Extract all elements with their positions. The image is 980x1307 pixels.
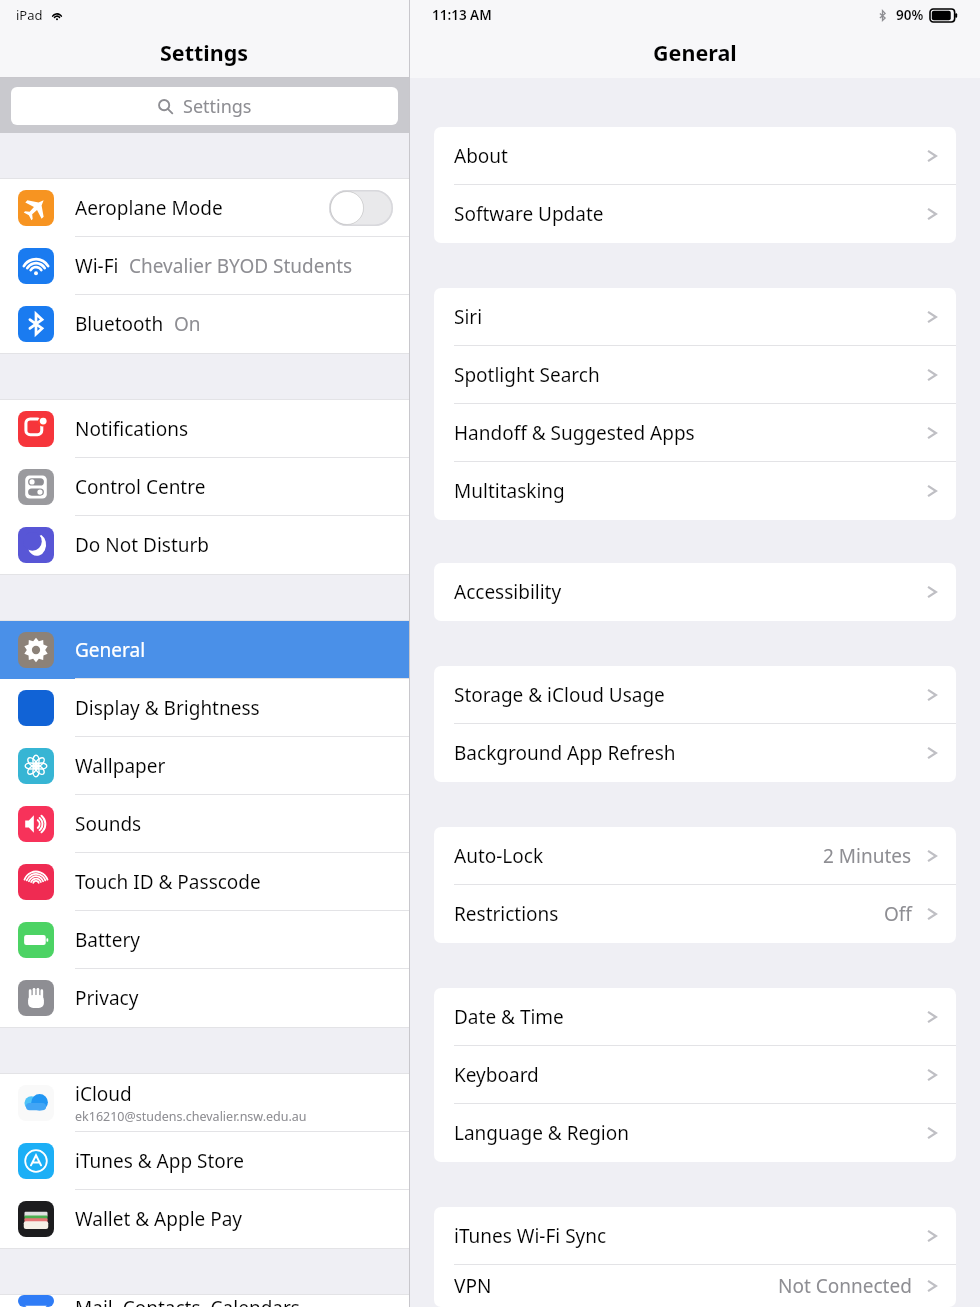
button[interactable]: Date & Time — [434, 988, 956, 1046]
staticText: VPN — [454, 1273, 778, 1299]
staticText: Settings — [183, 94, 252, 119]
staticText: Wi-Fi — [75, 253, 119, 279]
button[interactable]: Restrictions — [434, 885, 956, 943]
button[interactable]: Wallpaper — [0, 737, 409, 795]
staticText: Wallpaper — [75, 753, 166, 779]
staticText: Language & Region — [454, 1120, 922, 1146]
button[interactable]: Notifications — [0, 400, 409, 458]
staticText: Storage & iCloud Usage — [454, 682, 922, 708]
button[interactable]: Wi-Fi — [0, 237, 409, 295]
button[interactable]: General — [0, 621, 409, 679]
staticText: About — [454, 143, 922, 169]
staticText: Sounds — [75, 811, 142, 837]
staticText: General — [75, 637, 146, 663]
staticText: Do Not Disturb — [75, 532, 210, 558]
button[interactable]: Siri — [434, 288, 956, 346]
staticText: Wallet & Apple Pay — [75, 1206, 243, 1232]
staticText: Siri — [454, 304, 922, 330]
staticText: iPad — [16, 6, 43, 24]
staticText: Multitasking — [454, 478, 922, 504]
staticText: Keyboard — [454, 1062, 922, 1088]
staticText: iCloud — [75, 1081, 132, 1107]
button[interactable]: Language & Region — [434, 1104, 956, 1162]
button[interactable]: Touch ID & Passcode — [0, 853, 409, 911]
staticText: Touch ID & Passcode — [75, 869, 261, 895]
staticText: Settings — [160, 38, 249, 67]
button[interactable]: Spotlight Search — [434, 346, 956, 404]
staticText: Aeroplane Mode — [75, 195, 223, 221]
staticText: 90% — [896, 6, 924, 24]
staticText: Mail, Contacts, Calendars — [75, 1295, 300, 1307]
button[interactable]: Accessibility — [434, 563, 956, 621]
button[interactable]: Mail, Contacts, Calendars — [0, 1295, 409, 1307]
staticText: Off — [884, 901, 912, 927]
button[interactable]: Display & Brightness — [0, 679, 409, 737]
staticText: Auto-Lock — [454, 843, 823, 869]
button[interactable]: Software Update — [434, 185, 956, 243]
button[interactable]: Settings — [11, 87, 398, 125]
staticText: Not Connected — [778, 1273, 912, 1299]
button[interactable]: About — [434, 127, 956, 185]
staticText: Spotlight Search — [454, 362, 922, 388]
staticText: Privacy — [75, 985, 139, 1011]
staticText: iTunes & App Store — [75, 1148, 245, 1174]
button[interactable]: Privacy — [0, 969, 409, 1027]
staticText: 11:13 AM — [432, 6, 492, 24]
staticText: Chevalier BYOD Students — [129, 253, 353, 279]
staticText: Handoff & Suggested Apps — [454, 420, 922, 446]
button[interactable]: Auto-Lock — [434, 827, 956, 885]
button[interactable]: Control Centre — [0, 458, 409, 516]
button[interactable]: Background App Refresh — [434, 724, 956, 782]
staticText: Notifications — [75, 416, 189, 442]
staticText: Battery — [75, 927, 140, 953]
button[interactable]: Do Not Disturb — [0, 516, 409, 574]
button[interactable]: Battery — [0, 911, 409, 969]
staticText: Display & Brightness — [75, 695, 260, 721]
staticText: Restrictions — [454, 901, 884, 927]
button[interactable]: Sounds — [0, 795, 409, 853]
staticText: Control Centre — [75, 474, 206, 500]
button[interactable]: VPN — [434, 1265, 956, 1307]
button[interactable]: iTunes Wi-Fi Sync — [434, 1207, 956, 1265]
button[interactable]: Bluetooth — [0, 295, 409, 353]
staticText: iTunes Wi-Fi Sync — [454, 1223, 922, 1249]
button[interactable]: iTunes & App Store — [0, 1132, 409, 1190]
button[interactable]: Aeroplane Mode — [0, 179, 409, 237]
staticText: Software Update — [454, 201, 922, 227]
button[interactable]: Wallet & Apple Pay — [0, 1190, 409, 1248]
button[interactable]: Multitasking — [434, 462, 956, 520]
staticText: ek16210@studens.chevalier.nsw.edu.au — [75, 1108, 307, 1125]
staticText: Date & Time — [454, 1004, 922, 1030]
button[interactable]: iCloud — [0, 1074, 409, 1132]
staticText: Bluetooth — [75, 311, 164, 337]
staticText: 2 Minutes — [823, 843, 912, 869]
button[interactable]: Handoff & Suggested Apps — [434, 404, 956, 462]
staticText: Background App Refresh — [454, 740, 922, 766]
staticText: General — [653, 38, 737, 67]
staticText: On — [174, 311, 201, 337]
button[interactable]: Storage & iCloud Usage — [434, 666, 956, 724]
staticText: Accessibility — [454, 579, 922, 605]
button[interactable]: Keyboard — [434, 1046, 956, 1104]
